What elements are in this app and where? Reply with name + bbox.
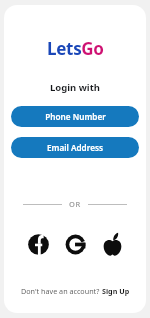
staticText: OR: [69, 199, 81, 209]
staticText: Login with: [50, 81, 101, 94]
staticText: Email Address: [47, 142, 103, 153]
staticText: Phone Number: [45, 111, 106, 122]
button[interactable]: Sign in with Apple: [98, 230, 126, 258]
button[interactable]: Email Address: [11, 137, 139, 158]
button[interactable]: Phone Number: [11, 106, 139, 127]
staticText: Don't have an account?: [21, 286, 102, 296]
staticText: LetsGo: [47, 37, 104, 60]
button[interactable]: Sign Up: [102, 286, 130, 296]
staticText: Sign Up: [102, 286, 130, 296]
button[interactable]: Sign in with Facebook: [24, 230, 52, 258]
button[interactable]: Sign in with Google: [61, 230, 89, 258]
